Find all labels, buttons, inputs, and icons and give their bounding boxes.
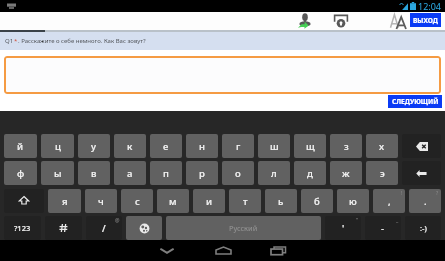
staticText: з [344,140,349,153]
button[interactable]: г [222,134,254,158]
staticText: - [381,222,385,235]
staticText: д [307,167,313,180]
staticText: а [127,167,133,180]
staticText: _ [396,217,399,224]
button[interactable]: д [294,161,326,185]
other: Shift [19,196,29,206]
button[interactable]: ц [41,134,74,158]
button[interactable]: п [150,161,182,185]
staticText: у [91,140,97,153]
button[interactable]: а [114,161,146,185]
button[interactable]: е [150,134,182,158]
staticText: б [314,195,320,208]
button[interactable]: ь [265,189,297,213]
staticText: р [199,167,205,180]
button[interactable]: ы [41,161,74,185]
staticText: п [163,167,169,180]
staticText: ц [55,140,61,153]
button[interactable]: в [78,161,110,185]
button[interactable]: л [258,161,290,185]
button[interactable]: ВЫХОД [410,13,441,27]
staticText: " [356,217,359,224]
staticText: СЛЕДУЮЩИЙ [392,97,439,106]
staticText: ВЫХОД [413,16,438,25]
staticText: в [91,167,97,180]
staticText: :-) [420,223,427,233]
button[interactable]: ?123 [4,216,41,240]
button[interactable]: ю [337,189,369,213]
button[interactable]: й [4,134,37,158]
button[interactable]: б [301,189,333,213]
button[interactable]: с [121,189,153,213]
staticText: / [102,222,106,235]
staticText: к [127,140,133,153]
staticText: ж [342,167,350,180]
other: Language [139,223,150,234]
button[interactable]: Upload [329,12,352,30]
button[interactable]: Shift [4,189,44,213]
staticText: ?123 [14,223,31,233]
staticText: я [62,195,68,208]
button[interactable]: о [222,161,254,185]
button[interactable]: Language [126,216,162,240]
button[interactable]: Backspace [402,134,441,158]
staticText: ч [98,195,104,208]
button[interactable]: Hide keyboard [139,240,195,261]
staticText: , [388,195,391,208]
staticText: 12:04 [418,0,442,12]
button[interactable]: т [229,189,261,213]
other: Settings [59,223,68,233]
button[interactable]: щ [294,134,326,158]
button[interactable]: Settings [45,216,82,240]
button[interactable]: СЛЕДУЮЩИЙ [388,95,442,108]
staticText: л [271,167,277,180]
button[interactable]: м [157,189,189,213]
button[interactable]: - [365,216,401,240]
button[interactable]: :-) [405,216,441,240]
button[interactable]: , [373,189,405,213]
staticText: ' [342,222,345,235]
button[interactable] [4,56,441,94]
button[interactable]: Respondent [294,12,316,30]
other: Enter [416,169,428,178]
button[interactable]: . [409,189,441,213]
staticText: й [17,140,24,153]
button[interactable]: н [186,134,218,158]
staticText: т [243,195,248,208]
button[interactable]: х [366,134,398,158]
button[interactable]: / [86,216,122,240]
button[interactable]: Recents [250,240,306,261]
button[interactable]: к [114,134,146,158]
button[interactable]: у [78,134,110,158]
button[interactable]: з [330,134,362,158]
staticText: ш [270,140,279,153]
staticText: ь [278,195,284,208]
button[interactable]: Русский [166,216,321,240]
button[interactable]: Home [195,240,251,261]
button[interactable]: ' [325,216,361,240]
staticText: х [379,140,385,153]
staticText: Русский [229,223,258,233]
button[interactable]: ж [330,161,362,185]
other: Backspace [416,142,428,151]
button[interactable]: Enter [402,161,441,185]
staticText: м [169,195,177,208]
staticText: ф [17,167,25,180]
button[interactable]: р [186,161,218,185]
staticText: е [163,140,169,153]
staticText: . Расскажите о себе немного. Как Вас зов… [18,37,146,45]
staticText: э [380,167,385,180]
button[interactable]: я [48,189,81,213]
button[interactable]: э [366,161,398,185]
button[interactable]: ф [4,161,37,185]
button[interactable]: Font size [388,12,409,30]
button[interactable]: ш [258,134,290,158]
staticText: Q1 [5,37,14,45]
staticText: ? [436,190,439,197]
staticText: * [14,37,18,45]
button[interactable]: ч [85,189,117,213]
button[interactable]: и [193,189,225,213]
staticText: @ [115,217,120,224]
staticText: с [135,195,140,208]
button[interactable]: Q1 [0,32,445,50]
